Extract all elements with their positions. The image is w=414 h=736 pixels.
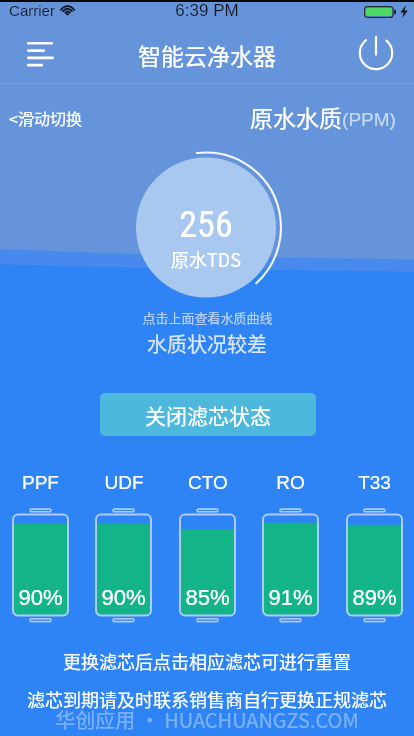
staticText: 原水TDS [171, 246, 241, 272]
staticText: Carrier [9, 2, 55, 19]
staticText: 原水水质 [250, 100, 342, 133]
staticText: 水质状况较差 [147, 329, 267, 358]
staticText: 智能云净水器 [138, 38, 276, 71]
staticText: 关闭滤芯状态 [145, 400, 271, 430]
staticText: 滤芯到期请及时联系销售商自行更换正规滤芯 [27, 686, 387, 712]
staticText: 256 [179, 204, 233, 246]
staticText: 6:39 PM [175, 1, 239, 20]
staticText: 90% [18, 585, 63, 610]
staticText: UDF [104, 472, 144, 493]
button[interactable]: 关闭滤芯状态 [100, 393, 316, 436]
staticText: 华创应用 • HUACHUANGZS.COM [55, 705, 359, 734]
staticText: <滑动切换 [9, 106, 82, 129]
staticText: 91% [268, 585, 313, 610]
staticText: 90% [101, 585, 146, 610]
button[interactable]: Power [344, 21, 408, 85]
button[interactable]: T33 [346, 472, 403, 621]
staticText: 点击上面查看水质曲线 [142, 308, 273, 327]
button[interactable]: Menu [10, 22, 74, 86]
staticText: 更换滤芯后点击相应滤芯可进行重置 [63, 648, 351, 674]
staticText: (PPM) [342, 109, 396, 130]
staticText: T33 [358, 472, 391, 493]
staticText: 89% [352, 585, 397, 610]
button[interactable]: <滑动切换 [9, 106, 82, 129]
button[interactable]: RO [262, 472, 319, 621]
button[interactable]: PPF [12, 472, 69, 621]
staticText: 85% [185, 585, 230, 610]
button[interactable]: CTO [179, 472, 236, 621]
button[interactable]: UDF [95, 472, 152, 621]
staticText: RO [276, 472, 305, 493]
button[interactable]: 256 [126, 147, 286, 307]
staticText: CTO [188, 472, 228, 493]
staticText: PPF [22, 472, 59, 493]
